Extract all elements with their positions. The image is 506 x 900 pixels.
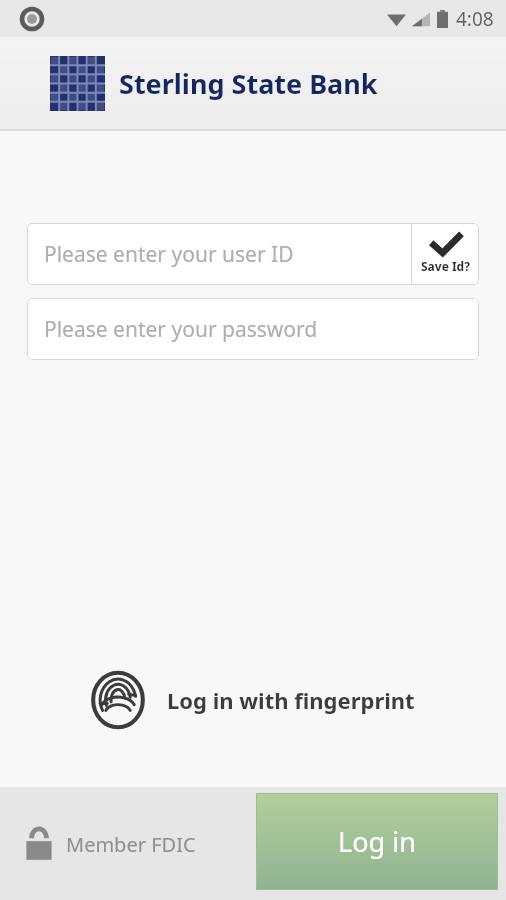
staticText: Sterling State Bank xyxy=(119,65,378,102)
button[interactable]: Log in xyxy=(256,793,498,890)
staticText: 4:08 xyxy=(456,6,494,32)
staticText: Please enter your password xyxy=(44,315,318,344)
staticText: Please enter your user ID xyxy=(44,240,294,269)
staticText: Log in xyxy=(338,823,416,860)
button[interactable]: Member FDIC xyxy=(24,826,196,862)
staticText: Member FDIC xyxy=(66,831,196,858)
staticText: Save Id? xyxy=(421,258,470,274)
staticText: Log in with fingerprint xyxy=(167,685,415,715)
button[interactable]: Please enter your password xyxy=(27,298,479,360)
button[interactable]: Log in with fingerprint xyxy=(0,671,506,729)
button[interactable]: Save Id xyxy=(412,223,479,285)
button[interactable]: Please enter your user ID xyxy=(27,223,411,285)
